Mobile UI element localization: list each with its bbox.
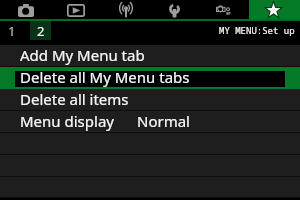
button[interactable]: [0, 155, 300, 177]
button[interactable]: Playback: [67, 4, 85, 17]
button[interactable]: Wireless settings: [118, 3, 134, 18]
button[interactable]: Delete all items: [0, 89, 300, 111]
button[interactable]: Delete all My Menu tabs: [0, 67, 300, 89]
staticText: Delete all items: [20, 89, 129, 109]
staticText: Delete all My Menu tabs: [20, 67, 190, 87]
button[interactable]: [0, 177, 300, 198]
button[interactable]: [0, 133, 300, 155]
staticText: 1: [8, 22, 16, 40]
button[interactable]: 1: [1, 21, 22, 40]
button[interactable]: My Menu: [266, 3, 281, 18]
button[interactable]: Set up: [169, 4, 180, 18]
button[interactable]: Custom functions: [216, 5, 231, 15]
staticText: Normal: [137, 111, 190, 131]
button[interactable]: 2: [30, 21, 51, 40]
staticText: MY MENU:Set up: [219, 24, 295, 36]
button[interactable]: Shooting settings: [18, 4, 34, 17]
staticText: 2: [37, 22, 45, 40]
staticText: Menu display: [20, 111, 114, 131]
staticText: Add My Menu tab: [20, 45, 145, 65]
button[interactable]: Add My Menu tab: [0, 45, 300, 67]
button[interactable]: Menu display: [0, 111, 300, 133]
